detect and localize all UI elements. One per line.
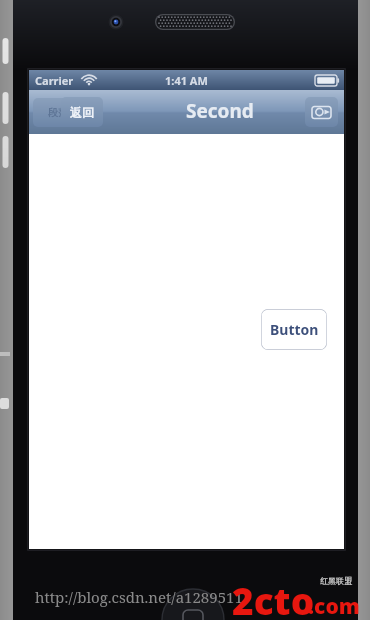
staticText: 红黑联盟 (320, 576, 352, 586)
button[interactable]: Camera (305, 97, 338, 127)
button[interactable]: 段落 (33, 98, 83, 127)
staticText: 返回 (70, 105, 94, 120)
staticText: Second (186, 98, 254, 124)
staticText: 2cto (232, 575, 315, 620)
staticText: Carrier (35, 73, 74, 88)
button[interactable]: Button (261, 309, 327, 350)
staticText: http://blog.csdn.net/a1289511 (35, 587, 243, 607)
staticText: 段落 (48, 106, 68, 119)
staticText: Button (270, 320, 319, 339)
staticText: .com (308, 592, 360, 620)
button[interactable]: 返回 (61, 97, 103, 127)
staticText: 1:41 AM (165, 73, 208, 88)
